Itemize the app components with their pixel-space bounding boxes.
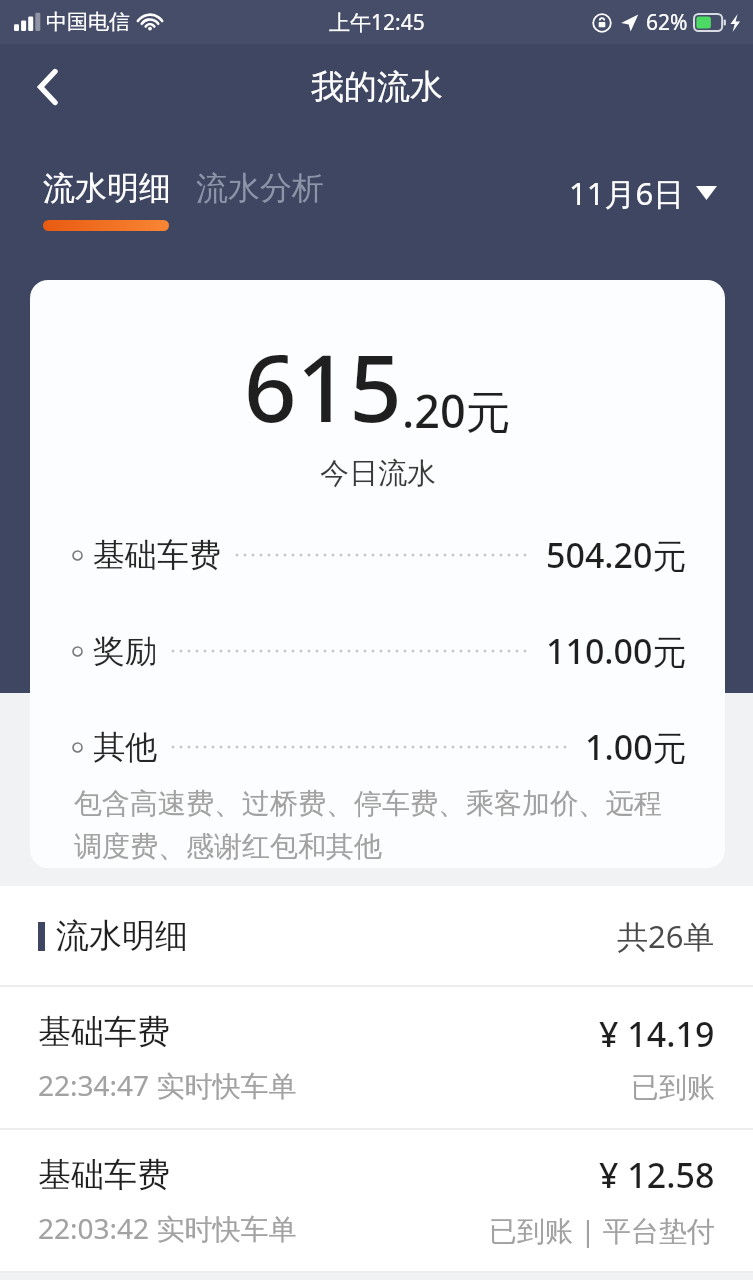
staticText: 中国电信 xyxy=(46,9,130,35)
staticText: 调度费、感谢红包和其他 xyxy=(74,829,382,864)
staticText: 基础车费 xyxy=(93,535,221,575)
staticText: 基础车费 xyxy=(38,1154,170,1196)
staticText: 22:34:47 实时快车单 xyxy=(38,1066,297,1104)
staticText: 上午12:45 xyxy=(329,8,425,37)
staticText: 1.00元 xyxy=(585,724,687,770)
staticText: 615 xyxy=(244,324,402,449)
staticText: ¥ 14.19 xyxy=(599,1011,715,1057)
staticText: 110.00元 xyxy=(546,628,687,674)
staticText: 流水分析 xyxy=(196,168,324,208)
staticText: 包含高速费、过桥费、停车费、乘客加价、远程 xyxy=(74,786,662,821)
staticText: .20元 xyxy=(402,380,511,441)
staticText: 504.20元 xyxy=(546,532,687,578)
staticText: 流水明细 xyxy=(43,168,171,208)
staticText: 已到账 xyxy=(631,1070,715,1105)
button[interactable]: Back xyxy=(18,57,78,117)
staticText: 奖励 xyxy=(93,631,157,671)
staticText: 今日流水 xyxy=(320,455,436,492)
staticText: 22:03:42 实时快车单 xyxy=(38,1209,297,1247)
staticText: 流水明细 xyxy=(56,915,188,957)
staticText: 已到账 | 平台垫付 xyxy=(489,1211,715,1249)
staticText: 62% xyxy=(646,8,688,37)
staticText: 基础车费 xyxy=(38,1011,170,1053)
button[interactable]: 流水分析 xyxy=(196,168,324,208)
button[interactable]: 流水明细 xyxy=(43,168,171,208)
staticText: ¥ 12.58 xyxy=(599,1152,715,1198)
staticText: 其他 xyxy=(93,727,157,767)
staticText: 11月6日 xyxy=(569,172,685,214)
button[interactable]: 11月6日 xyxy=(569,172,717,214)
staticText: 我的流水 xyxy=(311,66,443,108)
button[interactable]: 基础车费 xyxy=(0,987,753,1128)
button[interactable]: 基础车费 xyxy=(0,1130,753,1271)
staticText: 共26单 xyxy=(617,915,715,957)
